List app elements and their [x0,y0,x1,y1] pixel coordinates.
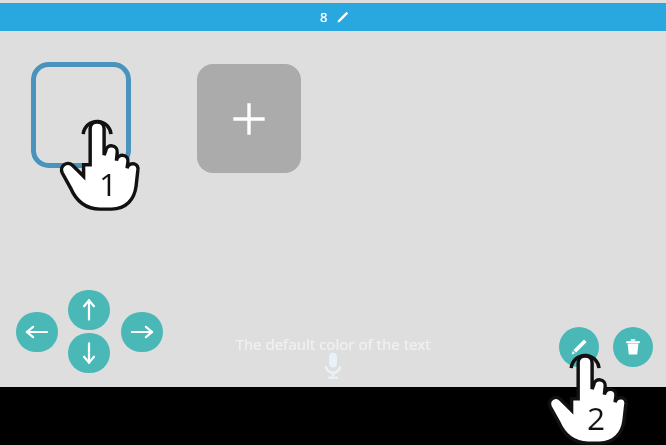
staticText: 8 [320,8,328,26]
button[interactable]: Move right [121,312,163,352]
button[interactable]: Move left [16,312,58,352]
button[interactable]: Add [197,64,301,173]
staticText: 1 [99,162,118,205]
other: Voice input [322,352,344,380]
button[interactable]: Delete [613,327,653,367]
staticText: The default color of the text [233,334,433,354]
button[interactable]: Empty slot [31,62,131,168]
button[interactable]: 8 [0,3,666,31]
button[interactable]: Move up [68,290,110,330]
button[interactable]: Edit [559,327,599,367]
button[interactable]: Move down [68,333,110,373]
staticText: 2 [587,396,606,439]
